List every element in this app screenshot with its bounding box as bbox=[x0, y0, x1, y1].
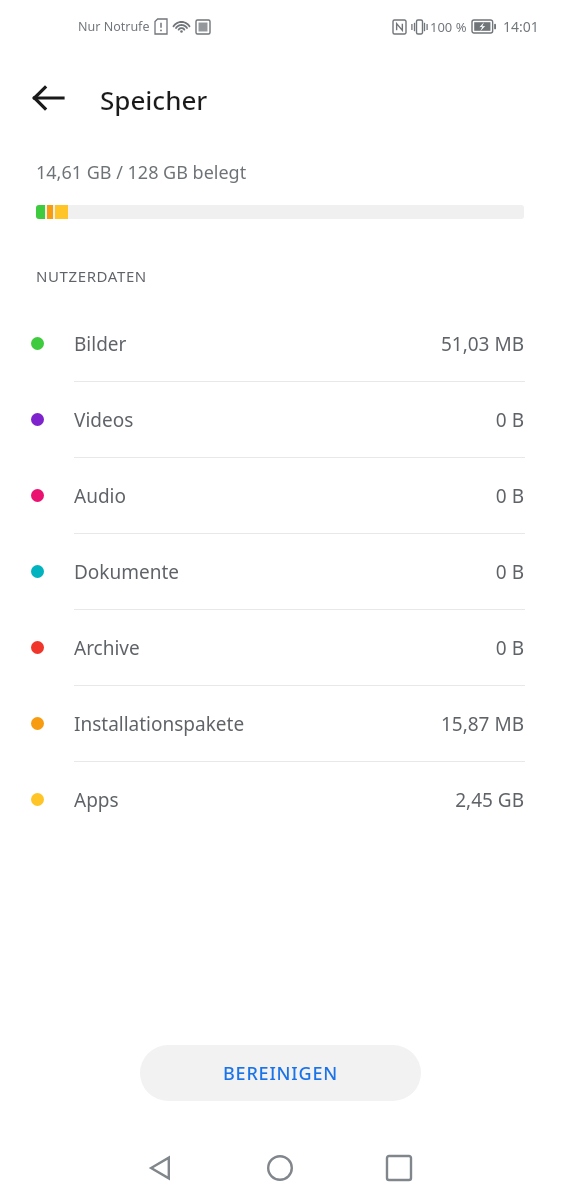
staticText: Nur Notrufe bbox=[78, 18, 150, 35]
button[interactable]: Dokumente bbox=[0, 534, 561, 609]
button[interactable]: Zurück bbox=[131, 1138, 191, 1198]
button[interactable]: Übersicht bbox=[369, 1138, 429, 1198]
staticText: Apps bbox=[74, 787, 119, 813]
button[interactable]: Startbildschirm bbox=[250, 1138, 310, 1198]
staticText: Archive bbox=[74, 635, 140, 661]
button[interactable]: Zurück bbox=[24, 74, 72, 122]
button[interactable]: Archive bbox=[0, 610, 561, 685]
staticText: Installationspakete bbox=[74, 711, 245, 737]
staticText: 2,45 GB bbox=[455, 787, 524, 813]
staticText: 0 B bbox=[495, 635, 524, 661]
staticText: Videos bbox=[74, 407, 134, 433]
staticText: 15,87 MB bbox=[440, 711, 524, 737]
button[interactable]: Bilder bbox=[0, 306, 561, 381]
button[interactable]: Audio bbox=[0, 458, 561, 533]
staticText: Speicher bbox=[100, 82, 208, 117]
staticText: Dokumente bbox=[74, 559, 180, 585]
staticText: 14:01 bbox=[503, 17, 539, 36]
staticText: 14,61 GB / 128 GB belegt bbox=[36, 160, 247, 185]
staticText: 100 % bbox=[430, 18, 467, 36]
staticText: BEREINIGEN bbox=[223, 1061, 338, 1086]
button[interactable]: Videos bbox=[0, 382, 561, 457]
staticText: 0 B bbox=[495, 559, 524, 585]
staticText: Bilder bbox=[74, 331, 127, 357]
staticText: 51,03 MB bbox=[440, 331, 524, 357]
staticText: 0 B bbox=[495, 407, 524, 433]
button[interactable]: Installationspakete bbox=[0, 686, 561, 761]
staticText: 0 B bbox=[495, 483, 524, 509]
staticText: NUTZERDATEN bbox=[36, 266, 147, 286]
staticText: Audio bbox=[74, 483, 126, 509]
button[interactable]: BEREINIGEN bbox=[140, 1045, 421, 1101]
button[interactable]: Apps bbox=[0, 762, 561, 837]
